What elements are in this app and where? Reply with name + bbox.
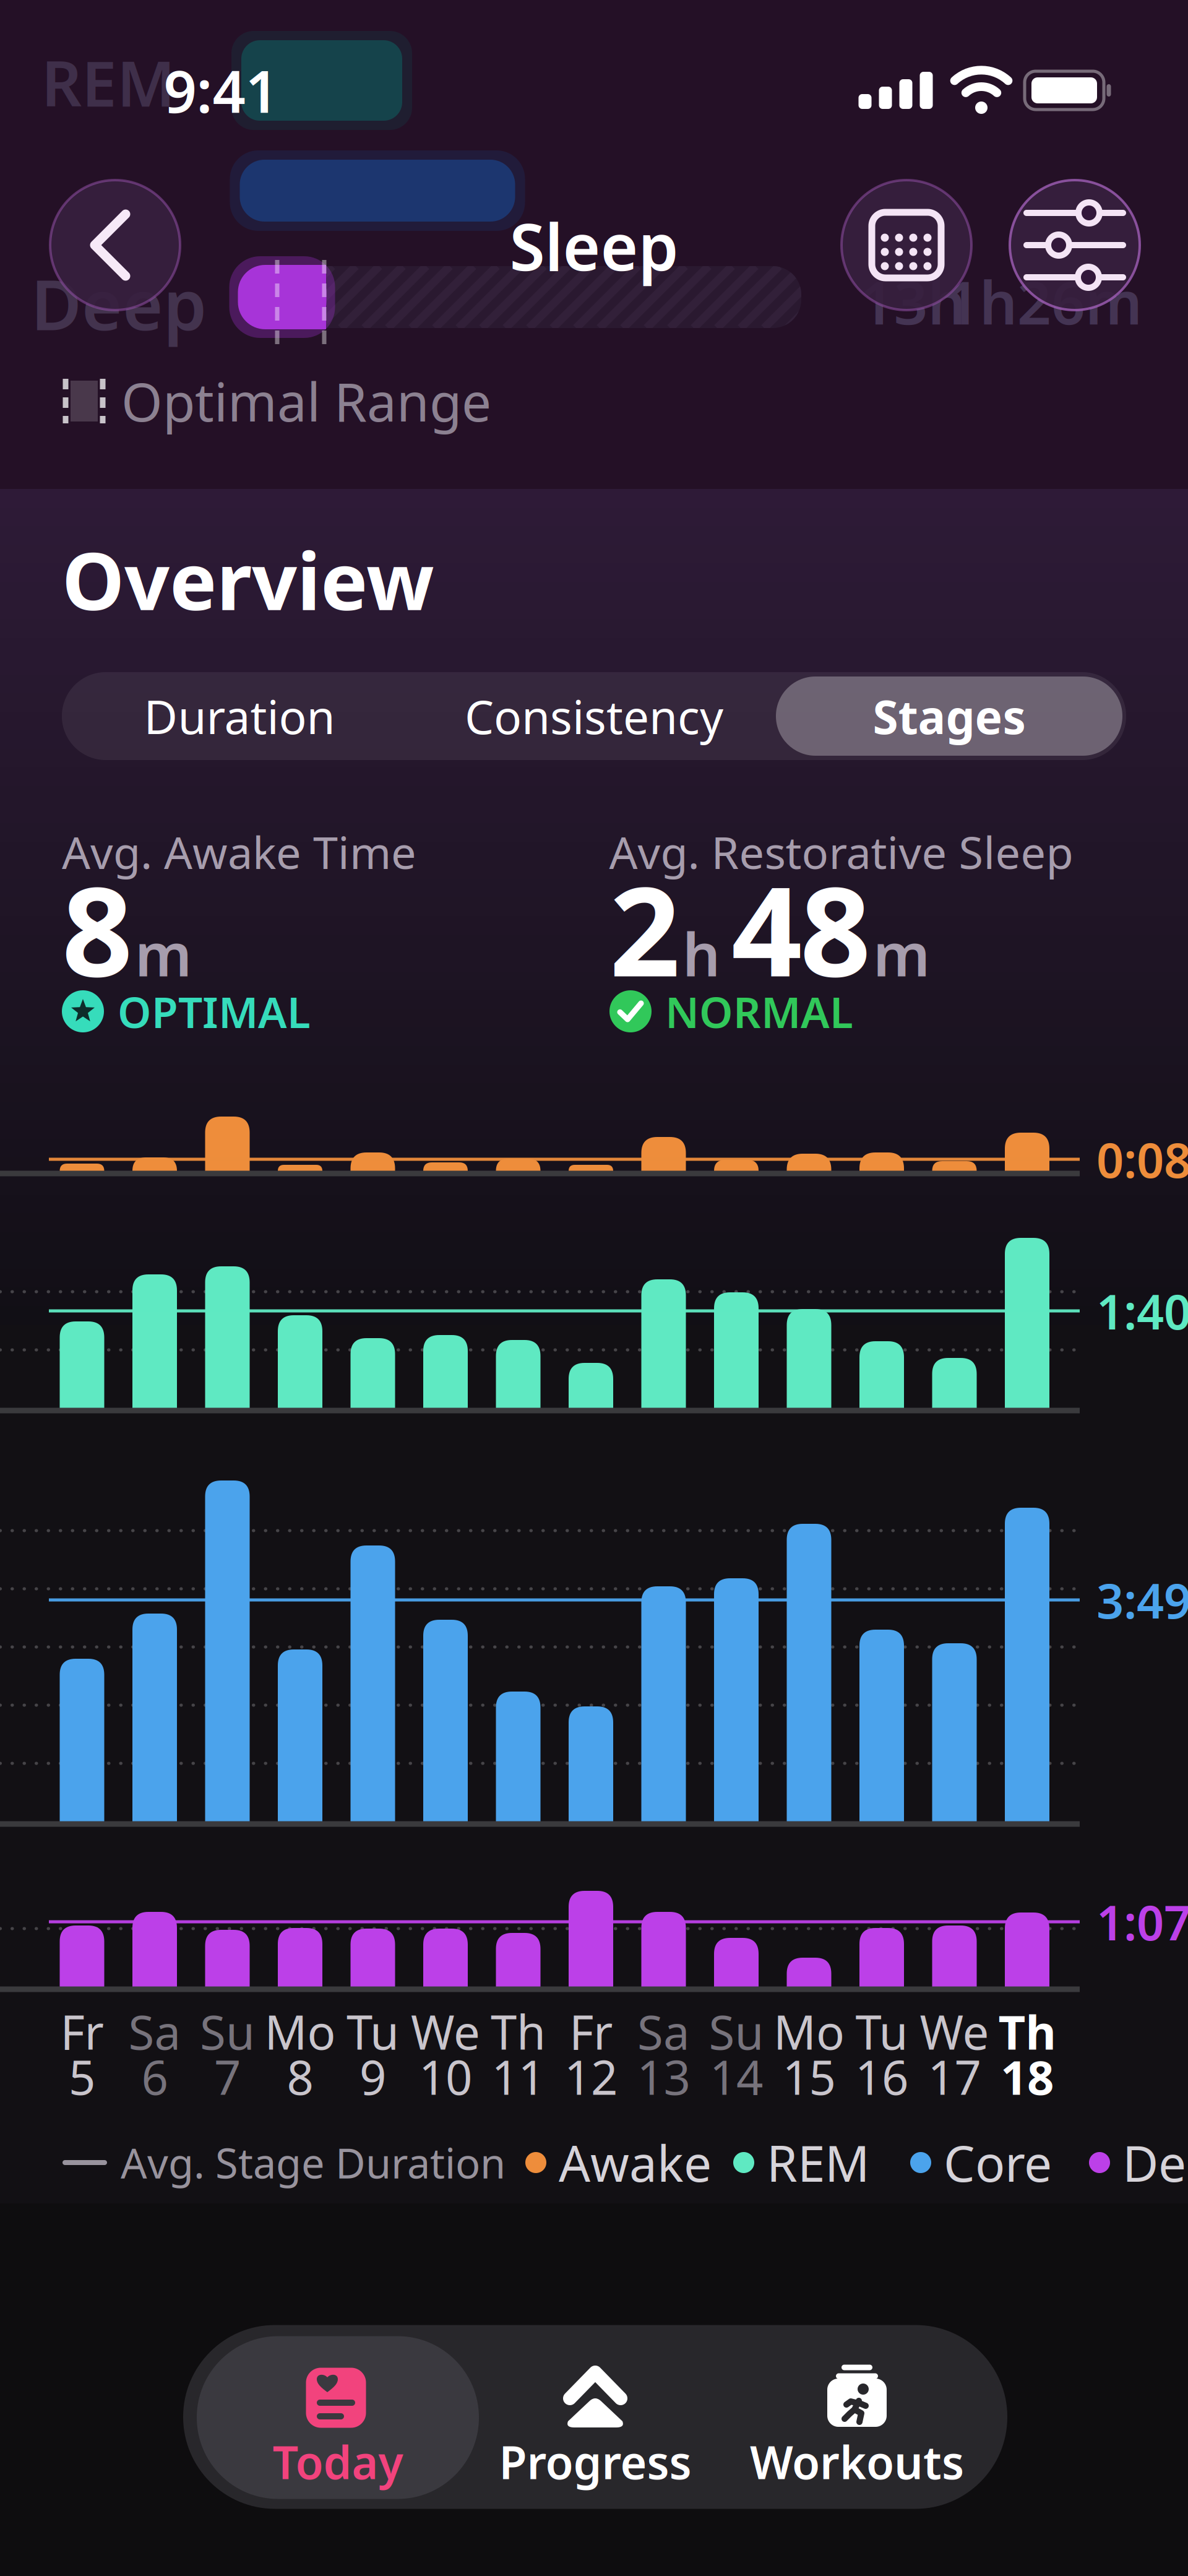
- staticText: 15: [782, 2045, 836, 2108]
- staticText: Avg. Restorative Sleep: [609, 822, 1073, 881]
- staticText: 5: [69, 2045, 95, 2108]
- button[interactable]: Stages: [776, 672, 1122, 760]
- button[interactable]: [841, 180, 971, 310]
- staticText: Sa: [637, 2000, 690, 2063]
- staticText: Su: [200, 2000, 255, 2063]
- staticText: REM: [41, 41, 175, 124]
- staticText: Optimal Range: [121, 366, 491, 436]
- staticText: Today: [273, 2431, 403, 2492]
- staticText: Tu: [855, 2000, 908, 2063]
- staticText: 1h: [945, 262, 1017, 341]
- staticText: h: [682, 914, 720, 993]
- staticText: 11: [492, 2045, 545, 2108]
- staticText: 8: [287, 2045, 313, 2108]
- staticText: 6: [141, 2045, 168, 2108]
- staticText: Tu: [346, 2000, 399, 2063]
- staticText: Avg. Stage Duration: [121, 2135, 506, 2190]
- button[interactable]: Workouts: [727, 2336, 987, 2499]
- staticText: 18: [1001, 2045, 1054, 2108]
- staticText: Deep: [1122, 2130, 1188, 2195]
- staticText: We: [920, 2000, 989, 2063]
- staticText: Workouts: [750, 2431, 964, 2492]
- staticText: Progress: [499, 2431, 691, 2492]
- staticText: Mo: [265, 2000, 336, 2063]
- staticText: 9: [359, 2045, 386, 2108]
- staticText: Sa: [128, 2000, 181, 2063]
- staticText: 2: [609, 846, 680, 1011]
- staticText: 3:49: [1096, 1568, 1188, 1632]
- staticText: Fr: [60, 2000, 104, 2063]
- staticText: Sleep: [510, 203, 678, 288]
- staticText: Core: [944, 2130, 1052, 2195]
- staticText: 14: [710, 2045, 763, 2108]
- button[interactable]: Duration: [66, 672, 413, 760]
- staticText: 13h: [860, 262, 966, 341]
- staticText: REM: [767, 2130, 870, 2195]
- staticText: Fr: [569, 2000, 613, 2063]
- staticText: 13: [637, 2045, 690, 2108]
- staticText: Mo: [773, 2000, 845, 2063]
- staticText: Deep: [31, 257, 207, 349]
- button[interactable]: Today: [197, 2336, 479, 2499]
- staticText: 16: [855, 2045, 908, 2108]
- staticText: OPTIMAL: [118, 983, 311, 1040]
- staticText: m: [873, 914, 930, 993]
- staticText: 26m: [1017, 262, 1142, 341]
- button[interactable]: [1010, 180, 1140, 310]
- staticText: 0:08: [1096, 1128, 1188, 1191]
- staticText: Overview: [62, 527, 434, 632]
- button[interactable]: Progress: [465, 2336, 725, 2499]
- staticText: 10: [419, 2045, 472, 2108]
- staticText: 12: [564, 2045, 618, 2108]
- staticText: m: [135, 914, 192, 993]
- staticText: NORMAL: [665, 983, 853, 1040]
- staticText: We: [411, 2000, 480, 2063]
- staticText: 9:41: [164, 52, 278, 129]
- staticText: 8: [62, 846, 132, 1011]
- staticText: 7: [214, 2045, 241, 2108]
- staticText: Duration: [144, 685, 335, 747]
- staticText: Awake: [559, 2130, 712, 2195]
- staticText: Stages: [873, 685, 1026, 747]
- staticText: Consistency: [465, 685, 723, 747]
- staticText: 48: [731, 846, 871, 1011]
- staticText: Th: [998, 2000, 1056, 2063]
- staticText: 1:07: [1096, 1890, 1188, 1954]
- staticText: Avg. Awake Time: [62, 822, 416, 881]
- button[interactable]: [50, 180, 180, 310]
- staticText: 17: [928, 2045, 981, 2108]
- staticText: Th: [491, 2000, 546, 2063]
- staticText: 1:40: [1096, 1279, 1188, 1343]
- staticText: Su: [709, 2000, 764, 2063]
- button[interactable]: Consistency: [421, 672, 767, 760]
